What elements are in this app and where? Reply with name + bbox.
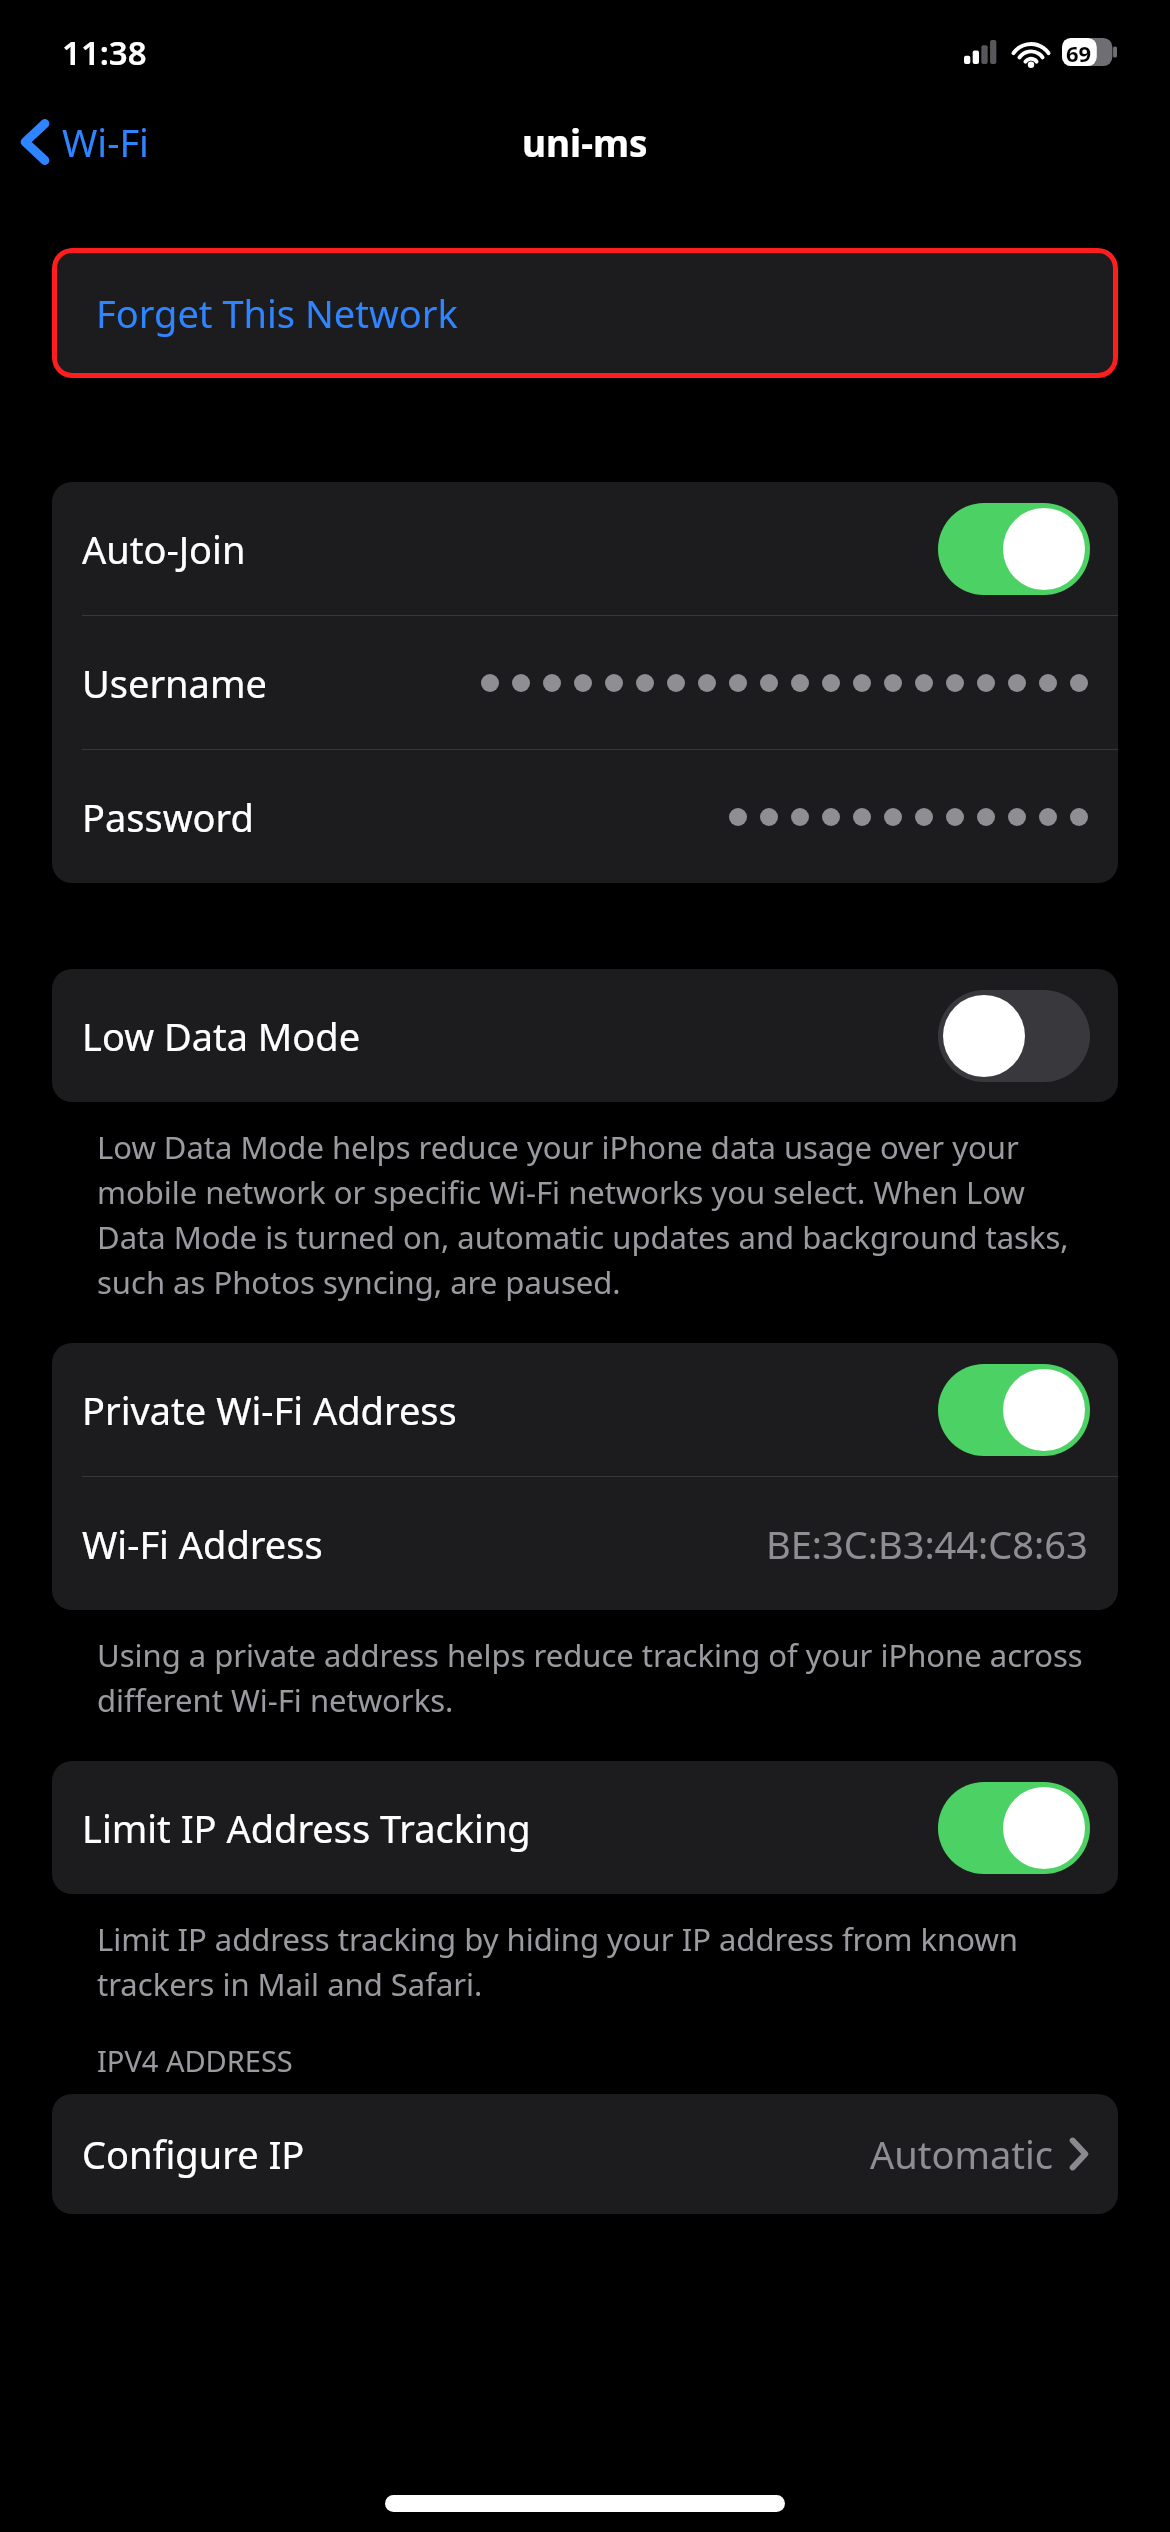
button[interactable]: Private Wi-Fi Address — [52, 1343, 1118, 1476]
button[interactable]: On — [938, 1782, 1090, 1874]
staticText: Limit IP Address Tracking — [82, 1802, 531, 1854]
button[interactable]: Low Data Mode — [52, 969, 1118, 1102]
button[interactable]: Auto-Join — [52, 482, 1118, 615]
staticText: Automatic — [870, 2128, 1054, 2180]
staticText: BE:3C:B3:44:C8:63 — [766, 1518, 1088, 1570]
staticText: Low Data Mode helps reduce your iPhone d… — [97, 1126, 1090, 1303]
button[interactable]: Password — [52, 750, 1118, 883]
staticText: Auto-Join — [82, 523, 246, 575]
staticText: Low Data Mode — [82, 1010, 361, 1062]
staticText: 11:38 — [62, 30, 147, 75]
staticText: Using a private address helps reduce tra… — [97, 1634, 1090, 1721]
button[interactable]: On — [938, 1364, 1090, 1456]
staticText: Forget This Network — [96, 287, 458, 339]
staticText: Private Wi-Fi Address — [82, 1384, 457, 1436]
staticText: Limit IP address tracking by hiding your… — [97, 1918, 1090, 2005]
button[interactable]: Configure IP — [52, 2094, 1118, 2214]
staticText: Username — [82, 657, 267, 709]
button[interactable]: Forget This Network — [52, 248, 1118, 378]
staticText: Configure IP — [82, 2128, 305, 2180]
button[interactable]: Limit IP Address Tracking — [52, 1761, 1118, 1894]
button[interactable]: Username — [52, 616, 1118, 749]
staticText: Wi-Fi — [62, 116, 149, 168]
staticText: uni-ms — [522, 117, 648, 167]
staticText: IPV4 ADDRESS — [97, 2041, 293, 2080]
staticText: Password — [82, 791, 254, 843]
staticText: Wi-Fi Address — [82, 1518, 323, 1570]
button[interactable]: Wi-Fi — [0, 106, 167, 178]
button[interactable]: On — [938, 503, 1090, 595]
button[interactable]: Off — [938, 990, 1090, 1082]
button[interactable]: Wi-Fi Address — [52, 1477, 1118, 1610]
staticText: 69 — [1066, 38, 1092, 66]
